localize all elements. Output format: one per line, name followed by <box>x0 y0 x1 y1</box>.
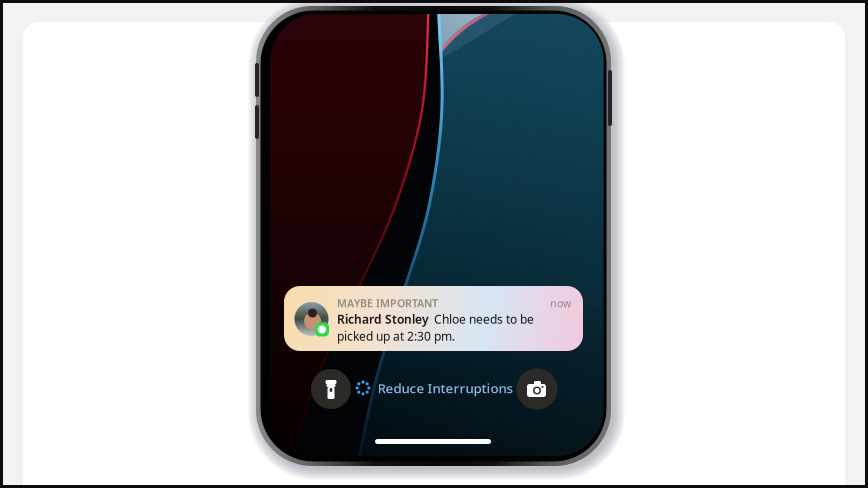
button[interactable]: Camera <box>516 368 557 409</box>
staticText: Reduce Interruptions <box>377 379 512 397</box>
staticText: picked up at 2:30 pm. <box>337 328 455 344</box>
button[interactable]: MAYBE IMPORTANT <box>284 286 583 351</box>
button[interactable]: Reduce Interruptions <box>355 379 512 397</box>
staticText: Chloe needs to be <box>434 311 534 327</box>
staticText: MAYBE IMPORTANT <box>337 296 438 310</box>
staticText: now <box>550 296 571 310</box>
staticText: Richard Stonley <box>337 311 429 327</box>
button[interactable]: Flashlight <box>311 369 351 409</box>
